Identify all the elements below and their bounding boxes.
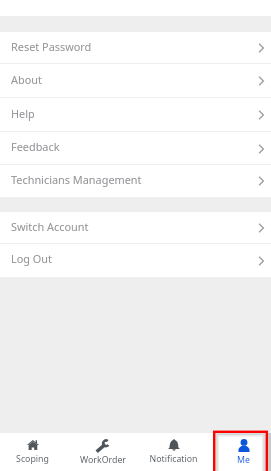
button[interactable]: Switch Account bbox=[0, 212, 271, 244]
staticText: Scoping bbox=[16, 453, 49, 465]
staticText: Technicians Management bbox=[11, 172, 142, 187]
staticText: About bbox=[11, 72, 42, 87]
button[interactable]: Scoping bbox=[0, 433, 66, 471]
staticText: Me bbox=[237, 454, 250, 466]
button[interactable]: Me bbox=[209, 433, 271, 471]
staticText: Log Out bbox=[11, 251, 52, 266]
button[interactable]: Reset Password bbox=[0, 32, 271, 64]
button[interactable]: Notification bbox=[139, 433, 207, 471]
staticText: Notification bbox=[149, 453, 198, 465]
button[interactable]: Feedback bbox=[0, 132, 271, 165]
staticText: Feedback bbox=[11, 139, 60, 154]
staticText: Reset Password bbox=[11, 39, 92, 54]
button[interactable]: About bbox=[0, 64, 271, 98]
button[interactable]: Log Out bbox=[0, 244, 271, 277]
button[interactable]: Help bbox=[0, 98, 271, 132]
staticText: WorkOrder bbox=[80, 454, 126, 466]
staticText: Switch Account bbox=[11, 219, 89, 234]
staticText: Help bbox=[11, 106, 35, 121]
button[interactable]: WorkOrder bbox=[69, 433, 137, 471]
button[interactable]: Technicians Management bbox=[0, 165, 271, 197]
